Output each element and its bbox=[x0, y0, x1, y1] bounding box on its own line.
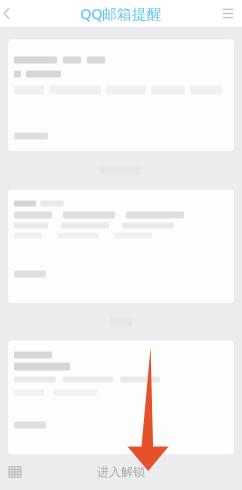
staticText: 进入解锁 bbox=[97, 465, 145, 479]
button[interactable]: Keyboard bbox=[0, 454, 30, 489]
staticText: QQ邮箱提醒 bbox=[80, 4, 162, 23]
button[interactable]: More bbox=[214, 0, 242, 27]
button[interactable]: Back bbox=[0, 0, 26, 27]
button[interactable]: 进入解锁 bbox=[84, 454, 158, 489]
